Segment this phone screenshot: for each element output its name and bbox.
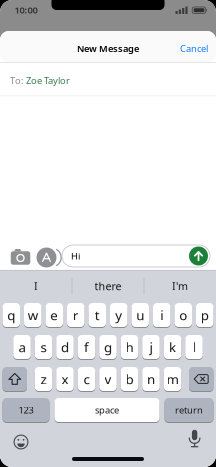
staticText: f xyxy=(84,338,89,356)
button[interactable]: f xyxy=(78,334,95,359)
staticText: 123 xyxy=(18,404,33,416)
staticText: Cancel xyxy=(180,42,208,55)
button[interactable]: g xyxy=(99,334,117,359)
staticText: Hi xyxy=(71,250,80,262)
button[interactable]: Send xyxy=(189,246,208,265)
button[interactable]: l xyxy=(185,334,203,359)
staticText: r xyxy=(73,306,79,324)
staticText: I xyxy=(34,279,38,293)
button[interactable]: n xyxy=(142,366,160,391)
staticText: d xyxy=(61,338,69,356)
staticText: space xyxy=(95,404,119,416)
staticText: e xyxy=(50,306,58,324)
button[interactable]: p xyxy=(196,302,213,327)
staticText: a xyxy=(18,338,25,356)
staticText: c xyxy=(83,370,89,388)
button[interactable]: I xyxy=(3,274,69,298)
button[interactable]: Apps xyxy=(36,247,56,267)
button[interactable]: a xyxy=(13,334,31,359)
button[interactable]: e xyxy=(45,302,63,327)
button[interactable]: Dictate xyxy=(188,429,201,448)
staticText: j xyxy=(149,338,152,356)
button[interactable]: x xyxy=(56,366,74,391)
button[interactable]: Camera xyxy=(9,248,31,265)
button[interactable]: r xyxy=(67,302,84,327)
staticText: p xyxy=(201,306,209,324)
button[interactable]: t xyxy=(88,302,106,327)
button[interactable]: z xyxy=(35,366,52,391)
button[interactable]: d xyxy=(56,334,74,359)
staticText: s xyxy=(40,338,46,356)
button[interactable]: k xyxy=(164,334,181,359)
button[interactable]: b xyxy=(121,366,138,391)
staticText: there xyxy=(94,279,121,293)
staticText: 10:00 xyxy=(14,4,37,16)
staticText: b xyxy=(125,370,133,388)
staticText: k xyxy=(169,338,176,356)
staticText: o xyxy=(179,306,187,324)
button[interactable]: To: xyxy=(0,64,216,96)
staticText: New Message xyxy=(77,42,139,55)
button[interactable]: I'm xyxy=(147,274,213,298)
staticText: g xyxy=(104,338,112,356)
staticText: q xyxy=(7,306,15,324)
staticText: u xyxy=(136,306,144,324)
staticText: m xyxy=(166,370,178,388)
staticText: t xyxy=(95,306,100,324)
staticText: v xyxy=(104,370,111,388)
button[interactable]: j xyxy=(142,334,160,359)
staticText: To: xyxy=(10,74,24,87)
staticText: n xyxy=(147,370,155,388)
staticText: x xyxy=(61,370,68,388)
button[interactable]: i xyxy=(153,302,170,327)
staticText: Zoe Taylor xyxy=(26,74,70,87)
button[interactable]: u xyxy=(131,302,149,327)
button[interactable]: there xyxy=(75,274,141,298)
button[interactable]: h xyxy=(121,334,138,359)
staticText: y xyxy=(115,306,122,324)
button[interactable]: m xyxy=(164,366,181,391)
button[interactable]: Delete xyxy=(189,366,213,391)
button[interactable]: Shift xyxy=(2,366,27,391)
button[interactable]: c xyxy=(78,366,95,391)
staticText: l xyxy=(192,338,195,356)
staticText: i xyxy=(160,306,163,324)
staticText: w xyxy=(28,306,38,324)
staticText: h xyxy=(125,338,133,356)
button[interactable]: y xyxy=(110,302,127,327)
staticText: I'm xyxy=(172,279,188,293)
staticText: return xyxy=(175,404,203,416)
button[interactable]: v xyxy=(99,366,117,391)
button[interactable]: Emoji xyxy=(13,434,28,449)
button[interactable]: s xyxy=(35,334,52,359)
button[interactable]: space xyxy=(54,397,159,422)
button[interactable]: return xyxy=(164,397,213,422)
button[interactable]: 123 xyxy=(2,397,49,422)
button[interactable]: w xyxy=(24,302,41,327)
button[interactable]: q xyxy=(2,302,20,327)
staticText: z xyxy=(40,370,46,388)
button[interactable]: o xyxy=(174,302,192,327)
button[interactable]: Cancel xyxy=(180,42,208,55)
